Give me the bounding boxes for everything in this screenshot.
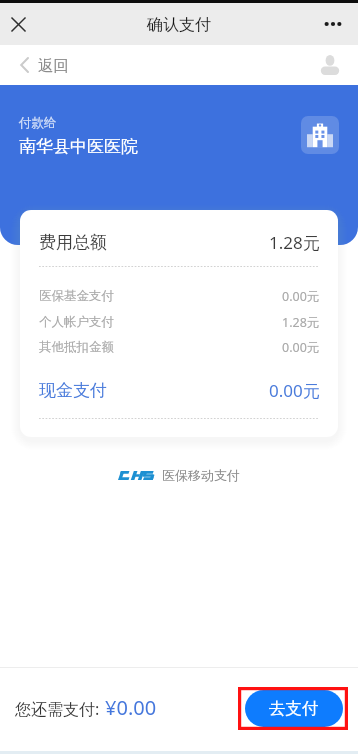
staticText: 费用总额 (39, 232, 107, 253)
staticText: 现金支付 (39, 380, 107, 401)
staticText: 去支付 (269, 698, 319, 719)
staticText: 1.28元 (269, 231, 320, 253)
staticText: 0.00元 (282, 288, 320, 305)
staticText: 个人帐户支付 (39, 314, 114, 330)
button[interactable]: More options (313, 3, 353, 45)
button[interactable]: 去支付 (245, 690, 343, 727)
staticText: 南华县中医医院 (19, 136, 138, 157)
button[interactable]: 返回 (0, 45, 358, 85)
button[interactable]: Profile (320, 55, 340, 75)
staticText: 确认支付 (147, 15, 211, 35)
staticText: 1.28元 (282, 314, 320, 331)
staticText: 返回 (38, 56, 69, 76)
staticText: 医保移动支付 (162, 467, 240, 483)
staticText: 您还需支付: (15, 698, 100, 720)
staticText: 0.00元 (269, 379, 320, 401)
staticText: 其他抵扣金额 (39, 339, 114, 355)
staticText: ¥0.00 (105, 694, 157, 717)
staticText: 医保基金支付 (39, 288, 114, 304)
staticText: 0.00元 (282, 339, 320, 356)
button[interactable]: Close (0, 3, 36, 45)
staticText: 付款给 (19, 115, 57, 131)
